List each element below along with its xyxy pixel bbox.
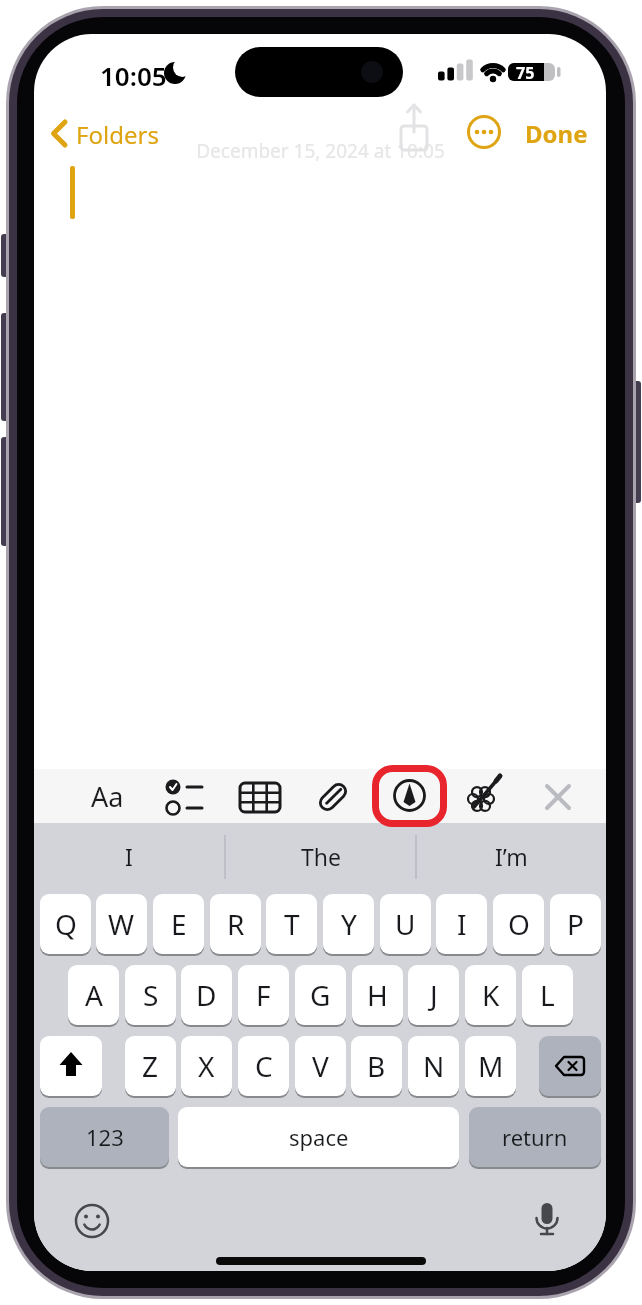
staticText: 123: [86, 1122, 124, 1152]
button[interactable]: I’m: [417, 823, 606, 890]
button[interactable]: The: [226, 823, 415, 890]
button[interactable]: return: [469, 1107, 601, 1167]
staticText: X: [198, 1047, 215, 1085]
staticText: Q: [55, 905, 77, 943]
button[interactable]: 123: [40, 1107, 169, 1167]
staticText: Y: [341, 905, 357, 943]
staticText: B: [367, 1047, 386, 1085]
button[interactable]: O: [493, 894, 544, 954]
button[interactable]: space: [178, 1107, 459, 1167]
staticText: C: [255, 1047, 273, 1085]
button[interactable]: A: [68, 965, 119, 1025]
staticText: N: [423, 1047, 445, 1085]
button[interactable]: I: [436, 894, 487, 954]
staticText: I: [457, 905, 467, 943]
staticText: F: [256, 976, 271, 1014]
button[interactable]: X: [181, 1036, 232, 1096]
staticText: space: [289, 1122, 349, 1152]
staticText: S: [143, 976, 159, 1014]
staticText: K: [482, 976, 500, 1014]
button[interactable]: S: [125, 965, 176, 1025]
staticText: H: [367, 976, 388, 1014]
button[interactable]: D: [181, 965, 232, 1025]
staticText: The: [301, 841, 341, 872]
button[interactable]: I: [34, 823, 224, 890]
button[interactable]: W: [96, 894, 147, 954]
button[interactable]: U: [380, 894, 431, 954]
staticText: Aa: [91, 778, 124, 815]
staticText: W: [108, 905, 135, 943]
button[interactable]: [149, 775, 197, 817]
staticText: A: [85, 976, 103, 1014]
button[interactable]: [44, 112, 174, 154]
button[interactable]: R: [210, 894, 261, 954]
staticText: I’m: [495, 841, 528, 872]
button[interactable]: N: [408, 1036, 459, 1096]
button[interactable]: [539, 1036, 601, 1096]
button[interactable]: [40, 1036, 102, 1096]
staticText: U: [395, 905, 416, 943]
button[interactable]: Aa: [82, 775, 132, 817]
button[interactable]: G: [295, 965, 346, 1025]
button[interactable]: M: [465, 1036, 516, 1096]
button[interactable]: T: [266, 894, 317, 954]
button[interactable]: [236, 775, 284, 817]
button[interactable]: Z: [125, 1036, 176, 1096]
button[interactable]: Y: [323, 894, 374, 954]
staticText: E: [171, 905, 187, 943]
button[interactable]: F: [238, 965, 289, 1025]
staticText: R: [227, 905, 245, 943]
button[interactable]: [461, 775, 509, 817]
staticText: P: [567, 905, 584, 943]
staticText: 75: [516, 62, 535, 84]
staticText: D: [196, 976, 217, 1014]
staticText: M: [478, 1047, 504, 1085]
button[interactable]: J: [408, 965, 459, 1025]
staticText: L: [540, 976, 555, 1014]
staticText: Folders: [76, 118, 159, 151]
button[interactable]: P: [550, 894, 601, 954]
button[interactable]: C: [238, 1036, 289, 1096]
button[interactable]: Done: [516, 114, 596, 152]
staticText: Done: [525, 117, 588, 150]
staticText: V: [312, 1047, 329, 1085]
button[interactable]: [534, 775, 582, 817]
button[interactable]: E: [153, 894, 204, 954]
button[interactable]: Q: [40, 894, 91, 954]
button[interactable]: K: [465, 965, 516, 1025]
staticText: J: [430, 976, 438, 1014]
staticText: T: [284, 905, 300, 943]
button[interactable]: B: [351, 1036, 402, 1096]
button[interactable]: V: [295, 1036, 346, 1096]
staticText: O: [508, 905, 530, 943]
button[interactable]: H: [352, 965, 403, 1025]
button[interactable]: [309, 775, 357, 817]
staticText: I: [125, 841, 133, 872]
button[interactable]: L: [522, 965, 573, 1025]
staticText: G: [310, 976, 331, 1014]
button[interactable]: [385, 775, 433, 817]
staticText: December 15, 2024 at 10:05: [196, 138, 445, 164]
staticText: Z: [142, 1047, 159, 1085]
staticText: return: [502, 1122, 568, 1152]
staticText: 10:05: [100, 58, 167, 93]
